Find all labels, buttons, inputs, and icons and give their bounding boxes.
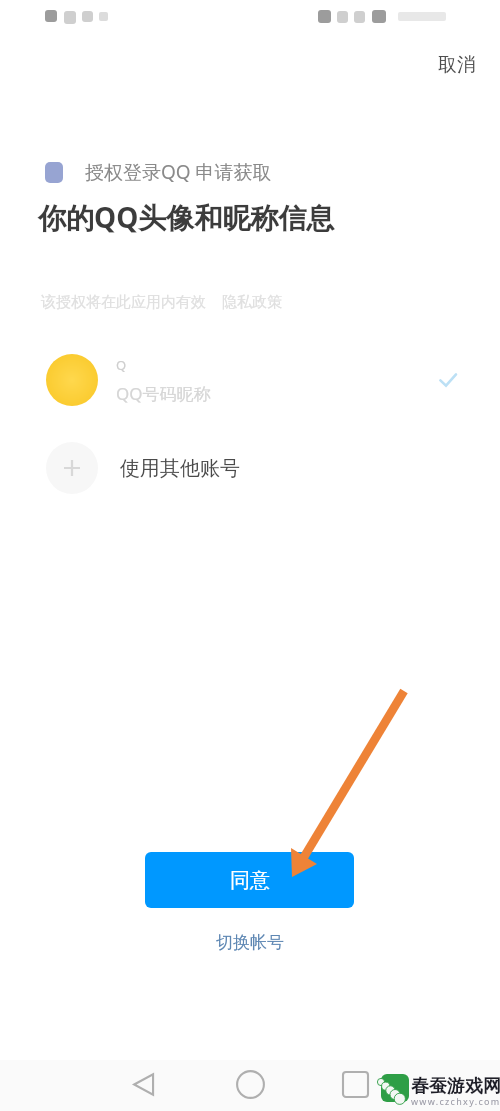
staticText: www.czchxy.com (411, 1095, 500, 1107)
staticText: 授权登录QQ 申请获取 (85, 159, 272, 185)
button[interactable]: Back (121, 1060, 169, 1108)
staticText: 同意 (230, 868, 270, 893)
button[interactable]: 同意 (145, 852, 354, 908)
button[interactable]: 取消 (430, 48, 484, 82)
button[interactable]: Recents (331, 1060, 379, 1108)
staticText: 切换帐号 (216, 932, 284, 953)
staticText: 该授权将在此应用内有效 (41, 293, 206, 312)
staticText: QQ号码昵称 (116, 382, 211, 405)
staticText: 使用其他账号 (120, 456, 240, 481)
button[interactable]: 使用其他账号 (0, 436, 500, 500)
staticText: 你的QQ头像和昵称信息 (38, 198, 335, 236)
staticText: 春蚕游戏网 (411, 1075, 500, 1098)
staticText: Q (116, 356, 127, 374)
staticText: 隐私政策 (222, 293, 282, 312)
button[interactable]: Q (0, 348, 500, 412)
staticText: 取消 (438, 53, 476, 77)
button[interactable]: 切换帐号 (210, 928, 290, 957)
button[interactable]: Home (226, 1060, 274, 1108)
